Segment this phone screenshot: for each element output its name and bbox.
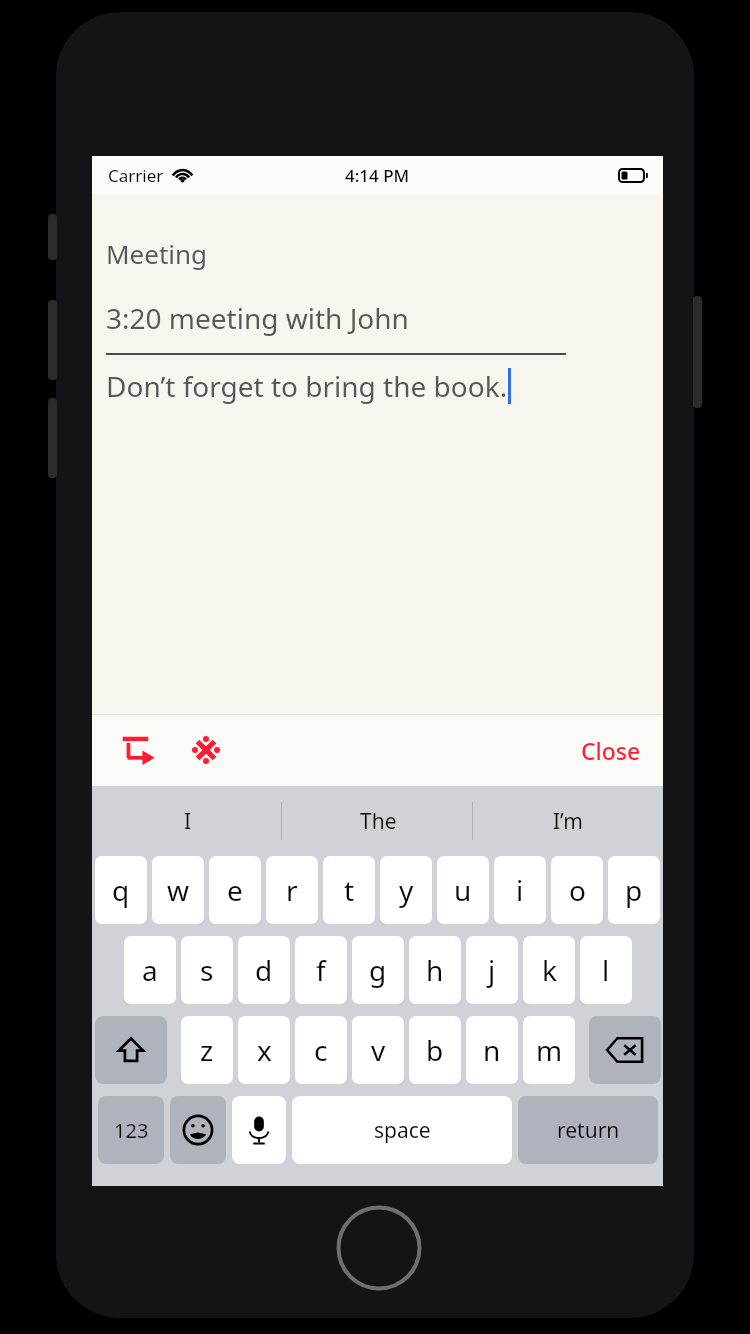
staticText: e bbox=[227, 871, 243, 909]
button[interactable]: x bbox=[238, 1016, 290, 1084]
button[interactable]: q bbox=[95, 856, 147, 924]
button[interactable]: y bbox=[380, 856, 432, 924]
button[interactable]: d bbox=[238, 936, 290, 1004]
staticText: 3:20 meeting with John bbox=[106, 299, 409, 337]
staticText: Carrier bbox=[108, 164, 164, 187]
staticText: d bbox=[255, 951, 273, 989]
staticText: w bbox=[167, 871, 190, 909]
button[interactable]: w bbox=[152, 856, 204, 924]
button[interactable]: l bbox=[580, 936, 632, 1004]
staticText: y bbox=[399, 871, 414, 909]
staticText: f bbox=[316, 951, 326, 989]
button[interactable]: g bbox=[352, 936, 404, 1004]
button[interactable]: h bbox=[409, 936, 461, 1004]
button[interactable]: I’m bbox=[473, 786, 663, 856]
staticText: z bbox=[200, 1031, 214, 1069]
button[interactable]: I bbox=[92, 786, 283, 856]
staticText: k bbox=[542, 951, 557, 989]
button[interactable]: i bbox=[494, 856, 546, 924]
staticText: h bbox=[426, 951, 444, 989]
staticText: q bbox=[112, 871, 130, 909]
button[interactable]: b bbox=[409, 1016, 461, 1084]
staticText: i bbox=[516, 871, 524, 909]
staticText: v bbox=[371, 1031, 386, 1069]
button[interactable]: o bbox=[551, 856, 603, 924]
button[interactable]: Formatting bbox=[182, 726, 230, 774]
button[interactable]: j bbox=[466, 936, 518, 1004]
button[interactable]: Dictate bbox=[232, 1096, 286, 1164]
button[interactable]: Close bbox=[567, 725, 655, 776]
staticText: b bbox=[426, 1031, 444, 1069]
staticText: Close bbox=[581, 735, 641, 766]
button[interactable]: return bbox=[518, 1096, 658, 1164]
staticText: 4:14 PM bbox=[345, 164, 410, 187]
staticText: The bbox=[360, 807, 397, 836]
staticText: n bbox=[483, 1031, 501, 1069]
button[interactable]: k bbox=[523, 936, 575, 1004]
staticText: p bbox=[625, 871, 643, 909]
button[interactable]: r bbox=[266, 856, 318, 924]
button[interactable]: Indent bbox=[114, 726, 162, 774]
staticText: u bbox=[454, 871, 472, 909]
staticText: c bbox=[314, 1031, 328, 1069]
button[interactable]: n bbox=[466, 1016, 518, 1084]
staticText: I bbox=[184, 807, 192, 836]
staticText: Don’t forget to bring the book. bbox=[106, 367, 508, 405]
staticText: a bbox=[142, 951, 158, 989]
staticText: x bbox=[257, 1031, 272, 1069]
button[interactable]: e bbox=[209, 856, 261, 924]
button[interactable]: 123 bbox=[98, 1096, 164, 1164]
button[interactable]: The bbox=[283, 786, 473, 856]
staticText: Meeting bbox=[106, 236, 208, 271]
button[interactable]: Shift bbox=[95, 1016, 167, 1084]
button[interactable]: c bbox=[295, 1016, 347, 1084]
button[interactable]: f bbox=[295, 936, 347, 1004]
staticText: t bbox=[344, 871, 355, 909]
staticText: return bbox=[557, 1116, 620, 1145]
staticText: r bbox=[286, 871, 298, 909]
button[interactable]: Meeting bbox=[92, 194, 663, 714]
staticText: I’m bbox=[553, 807, 583, 836]
staticText: 123 bbox=[114, 1117, 149, 1144]
button[interactable]: t bbox=[323, 856, 375, 924]
button[interactable]: p bbox=[608, 856, 660, 924]
button[interactable]: v bbox=[352, 1016, 404, 1084]
staticText: j bbox=[488, 951, 496, 989]
staticText: s bbox=[200, 951, 214, 989]
staticText: g bbox=[369, 951, 387, 989]
staticText: o bbox=[569, 871, 586, 909]
button[interactable]: space bbox=[292, 1096, 512, 1164]
button[interactable]: Delete bbox=[589, 1016, 661, 1084]
staticText: m bbox=[536, 1031, 563, 1069]
button[interactable]: Home bbox=[336, 1205, 422, 1291]
button[interactable]: a bbox=[124, 936, 176, 1004]
staticText: space bbox=[374, 1116, 431, 1145]
button[interactable]: Emoji bbox=[170, 1096, 226, 1164]
button[interactable]: m bbox=[523, 1016, 575, 1084]
button[interactable]: u bbox=[437, 856, 489, 924]
button[interactable]: z bbox=[181, 1016, 233, 1084]
staticText: l bbox=[602, 951, 610, 989]
button[interactable]: s bbox=[181, 936, 233, 1004]
